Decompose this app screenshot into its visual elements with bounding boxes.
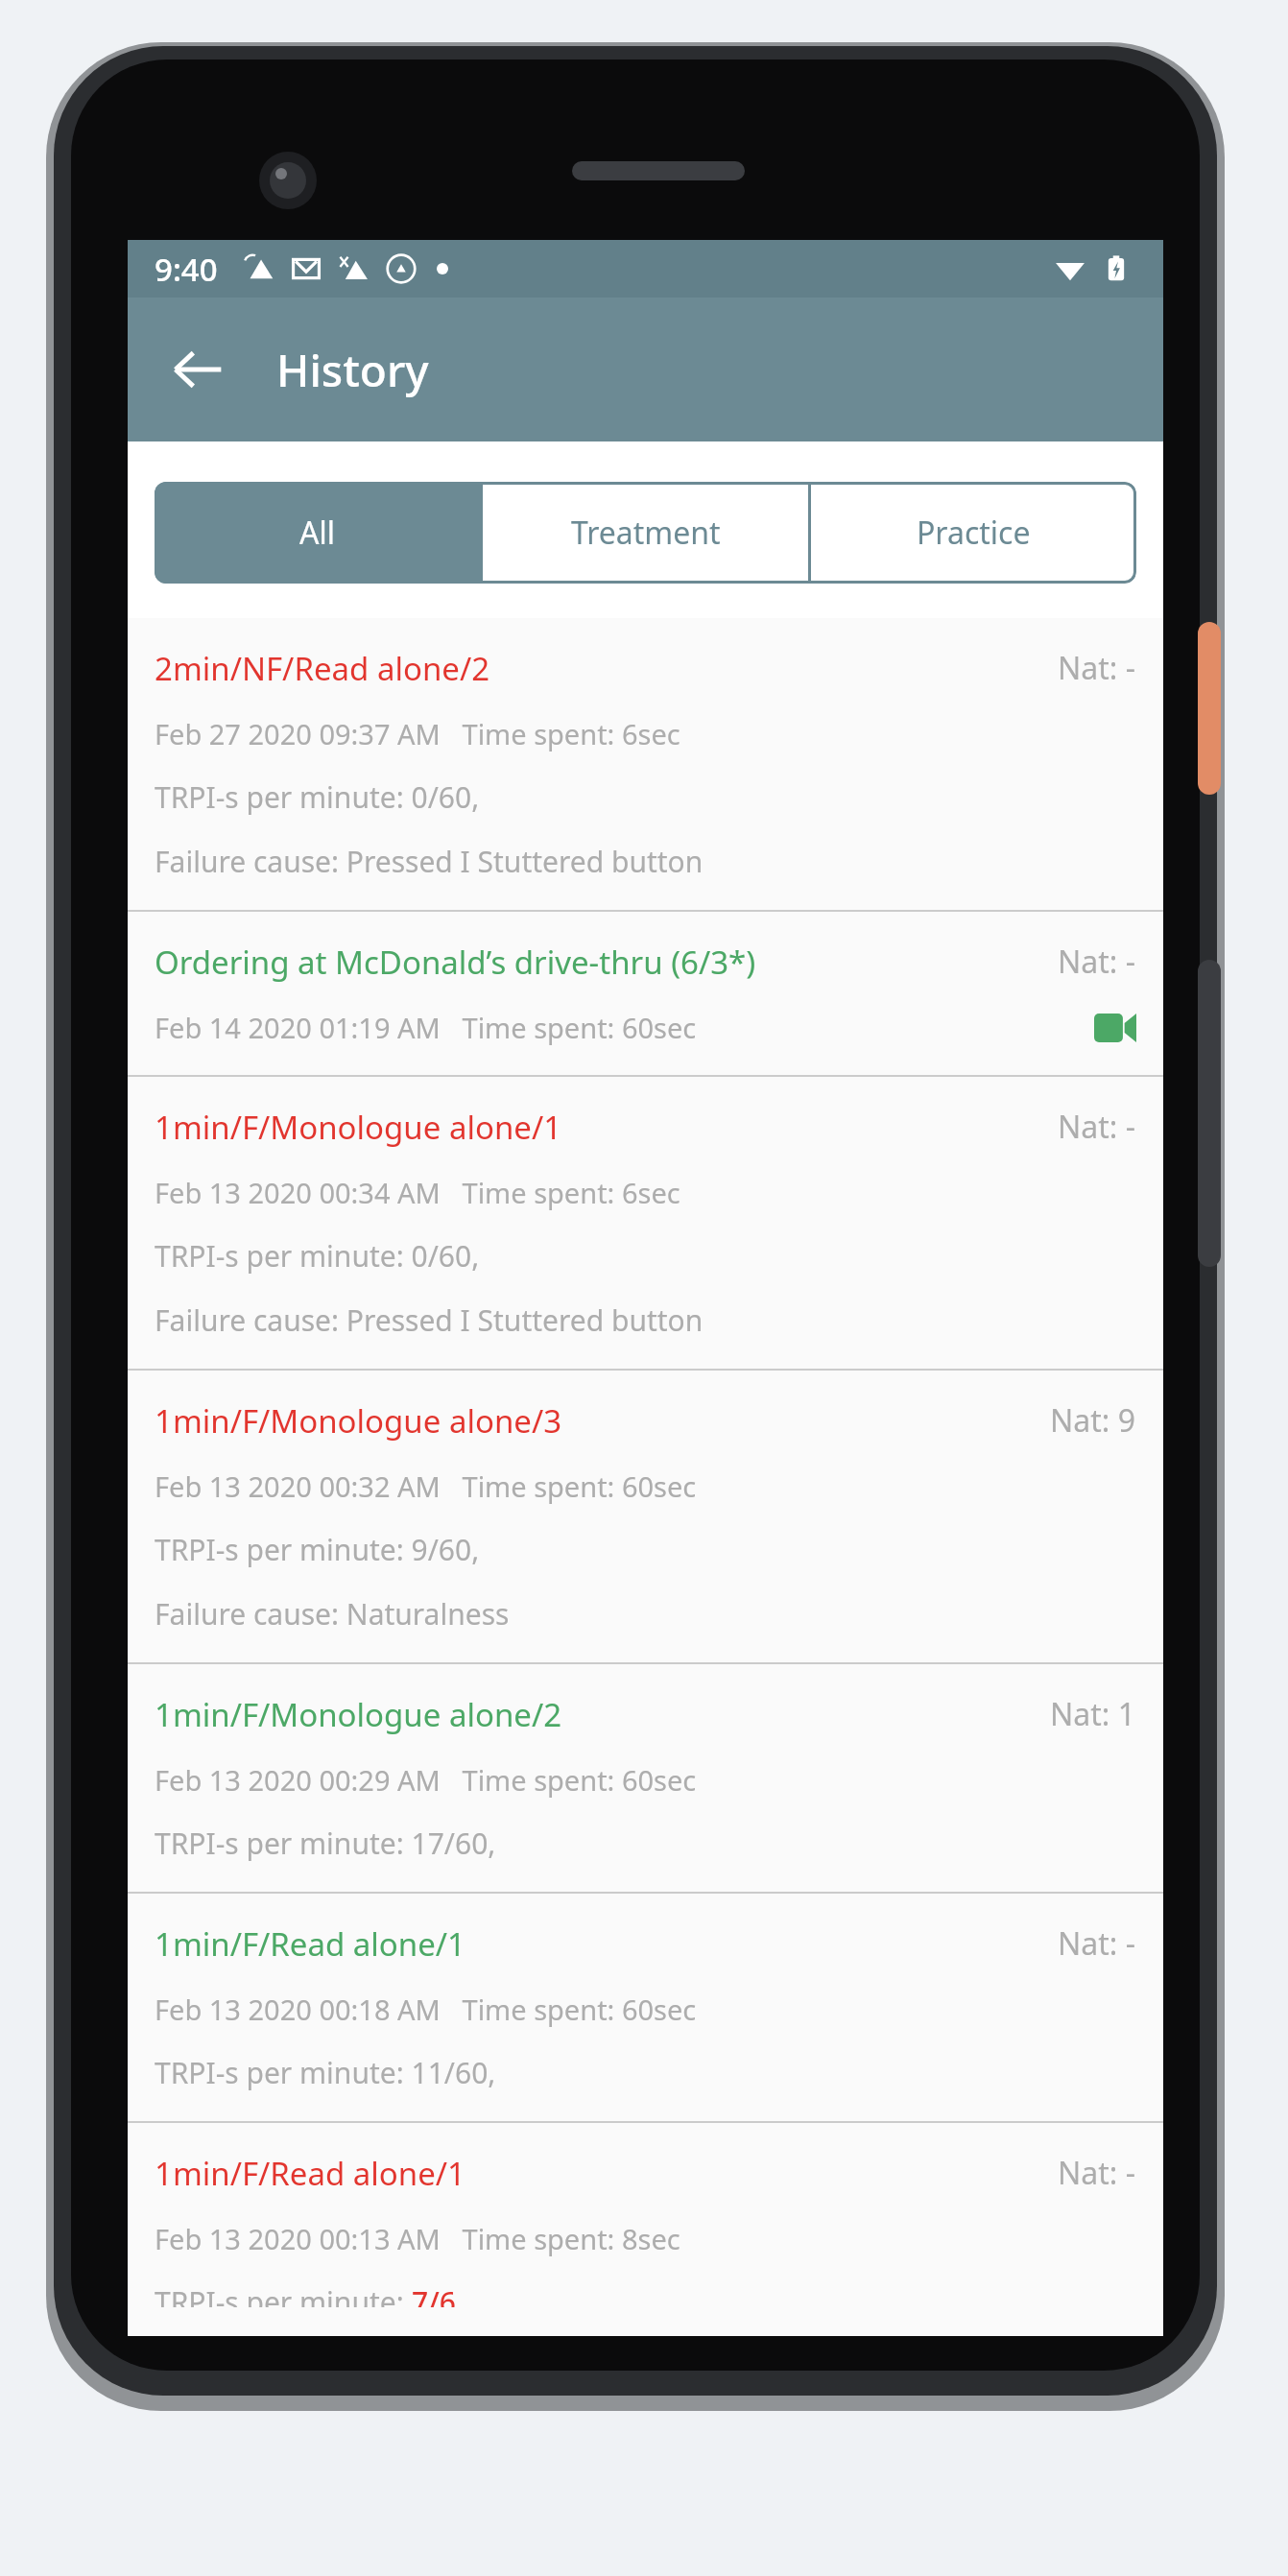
- staticText: 1min/F/Monologue alone/2: [155, 1693, 1050, 1736]
- staticText: Practice: [917, 512, 1031, 554]
- button[interactable]: 1min/F/Monologue alone/1: [128, 1077, 1163, 1369]
- button[interactable]: 1min/F/Read alone/1: [128, 1894, 1163, 2121]
- button[interactable]: 1min/F/Monologue alone/3: [128, 1371, 1163, 1662]
- staticText: 1min/F/Monologue alone/3: [155, 1399, 1050, 1443]
- staticText: History: [276, 340, 429, 400]
- staticText: Feb 27 2020 09:37 AM Time spent: 6sec: [155, 715, 1136, 752]
- staticText: Ordering at McDonald’s drive-thru (6/3*): [155, 941, 1058, 984]
- staticText: 7/6,: [412, 2282, 465, 2307]
- staticText: Feb 13 2020 00:29 AM Time spent: 60sec: [155, 1761, 1136, 1799]
- staticText: Failure cause: Naturalness: [155, 1594, 510, 1634]
- button[interactable]: Practice: [811, 482, 1136, 584]
- staticText: Nat: -: [1058, 941, 1136, 983]
- staticText: TRPI-s per minute: 11/60,: [155, 2053, 496, 2092]
- staticText: Failure cause: Pressed I Stuttered butto…: [155, 1300, 704, 1340]
- staticText: All: [299, 512, 335, 554]
- staticText: Nat: -: [1058, 647, 1136, 689]
- staticText: TRPI-s per minute:: [155, 2282, 412, 2307]
- staticText: TRPI-s per minute: 9/60,: [155, 1530, 480, 1569]
- button[interactable]: All: [155, 482, 480, 584]
- staticText: Feb 14 2020 01:19 AM Time spent: 60sec: [155, 1009, 1094, 1046]
- staticText: Nat: 1: [1050, 1693, 1136, 1735]
- button[interactable]: 1min/F/Read alone/1: [128, 2123, 1163, 2336]
- staticText: Nat: 9: [1050, 1399, 1136, 1442]
- button[interactable]: Back: [145, 317, 250, 422]
- staticText: 9:40: [155, 248, 218, 291]
- staticText: 1min/F/Read alone/1: [155, 1922, 1058, 1966]
- button[interactable]: 1min/F/Monologue alone/2: [128, 1664, 1163, 1892]
- staticText: Nat: -: [1058, 2152, 1136, 2194]
- staticText: Feb 13 2020 00:13 AM Time spent: 8sec: [155, 2220, 1136, 2257]
- staticText: Nat: -: [1058, 1106, 1136, 1148]
- staticText: TRPI-s per minute: 0/60,: [155, 1236, 480, 1276]
- staticText: Feb 13 2020 00:32 AM Time spent: 60sec: [155, 1467, 1136, 1505]
- button[interactable]: Ordering at McDonald’s drive-thru (6/3*): [128, 912, 1163, 1075]
- button[interactable]: 2min/NF/Read alone/2: [128, 618, 1163, 910]
- staticText: Failure cause: Pressed I Stuttered butto…: [155, 842, 704, 881]
- staticText: 1min/F/Monologue alone/1: [155, 1106, 1058, 1149]
- staticText: 2min/NF/Read alone/2: [155, 647, 1058, 690]
- staticText: 1min/F/Read alone/1: [155, 2152, 1058, 2195]
- staticText: Treatment: [571, 512, 721, 554]
- staticText: TRPI-s per minute: 0/60,: [155, 777, 480, 817]
- staticText: TRPI-s per minute: 17/60,: [155, 1824, 496, 1863]
- button[interactable]: Treatment: [483, 482, 808, 584]
- staticText: Nat: -: [1058, 1922, 1136, 1965]
- staticText: Feb 13 2020 00:18 AM Time spent: 60sec: [155, 1991, 1136, 2028]
- staticText: Feb 13 2020 00:34 AM Time spent: 6sec: [155, 1174, 1136, 1211]
